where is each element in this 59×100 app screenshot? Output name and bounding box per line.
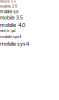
staticText: mobile 2.0 — [0, 0, 16, 3]
staticText: mobile 2.5 — [0, 4, 17, 8]
staticText: mobile sys3 — [0, 34, 21, 39]
staticText: mobile sys2 — [0, 29, 16, 33]
staticText: mobile 3.0 — [0, 9, 19, 14]
staticText: mobile sys4 — [0, 40, 29, 47]
staticText: mobile 4.0 — [0, 22, 25, 28]
staticText: mobile 3.5 — [0, 15, 23, 21]
